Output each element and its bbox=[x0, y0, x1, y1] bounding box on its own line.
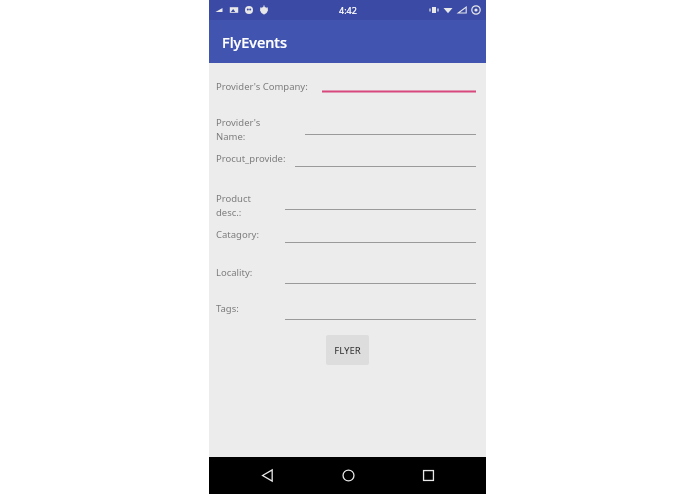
button[interactable]: Provider's bbox=[209, 106, 486, 146]
staticText: Product bbox=[216, 192, 251, 205]
button[interactable]: Tags: bbox=[209, 297, 486, 333]
staticText: desc.: bbox=[216, 206, 242, 219]
staticText: Provider's bbox=[216, 116, 261, 129]
button[interactable]: Locality: bbox=[209, 261, 486, 297]
button[interactable]: Home bbox=[326, 457, 370, 494]
button[interactable]: Back bbox=[245, 457, 289, 494]
button[interactable]: Procut_provide: bbox=[209, 149, 486, 185]
staticText: Tags: bbox=[216, 302, 239, 315]
button[interactable]: Provider's Company: bbox=[209, 63, 486, 103]
button[interactable]: Catagory: bbox=[209, 225, 486, 261]
staticText: FLYER bbox=[334, 344, 361, 357]
staticText: FlyEvents bbox=[222, 32, 287, 52]
staticText: Locality: bbox=[216, 266, 253, 279]
staticText: 4:42 bbox=[339, 4, 357, 16]
staticText: Catagory: bbox=[216, 228, 259, 241]
button[interactable]: FLYER bbox=[326, 335, 369, 365]
staticText: Name: bbox=[216, 130, 246, 143]
button[interactable]: Recent apps bbox=[406, 457, 450, 494]
staticText: Procut_provide: bbox=[216, 152, 286, 165]
staticText: Provider's Company: bbox=[216, 80, 308, 93]
button[interactable]: Product bbox=[209, 187, 486, 225]
